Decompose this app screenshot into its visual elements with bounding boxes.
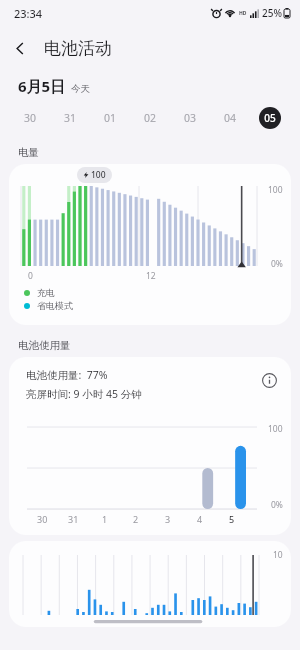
staticText: 2: [133, 513, 139, 525]
staticText: 100: [91, 169, 106, 181]
staticText: 01: [104, 111, 117, 125]
staticText: 31: [68, 513, 79, 525]
staticText: 100: [268, 423, 283, 435]
staticText: 4: [197, 513, 203, 525]
button[interactable]: 02: [130, 98, 170, 138]
staticText: 亮屏时间: 9 小时 45 分钟: [26, 387, 142, 401]
staticText: 100: [268, 184, 283, 196]
staticText: 电池活动: [44, 38, 112, 59]
staticText: 10: [273, 549, 283, 561]
staticText: 12: [146, 270, 156, 282]
staticText: HD: [239, 10, 247, 17]
staticText: 05: [264, 111, 276, 125]
staticText: 30: [24, 111, 37, 125]
staticText: 02: [144, 111, 157, 125]
staticText: 23:34: [14, 6, 43, 21]
staticText: 5: [229, 513, 235, 525]
button[interactable]: 100: [9, 164, 291, 325]
staticText: 省电模式: [37, 300, 73, 311]
button[interactable]: 03: [170, 98, 210, 138]
staticText: 0%: [271, 258, 283, 270]
button[interactable]: 04: [210, 98, 250, 138]
staticText: 25%: [262, 6, 282, 20]
staticText: 0: [28, 270, 33, 282]
button[interactable]: 31: [50, 98, 90, 138]
staticText: 03: [184, 111, 197, 125]
staticText: 3: [165, 513, 171, 525]
button[interactable]: 返回: [0, 28, 40, 68]
staticText: 30: [37, 513, 48, 525]
button[interactable]: 30: [10, 98, 50, 138]
staticText: 今天: [71, 83, 90, 95]
button[interactable]: 05: [250, 98, 290, 138]
staticText: 04: [224, 111, 237, 125]
button[interactable]: 01: [90, 98, 130, 138]
staticText: 电池使用量: [18, 339, 71, 352]
staticText: 电池使用量: 77%: [26, 368, 108, 382]
staticText: 31: [64, 111, 77, 125]
staticText: 1: [102, 513, 108, 525]
staticText: 0%: [271, 499, 283, 511]
staticText: 电量: [18, 146, 39, 159]
staticText: 6月5日: [18, 76, 66, 96]
button[interactable]: 信息: [257, 368, 281, 392]
staticText: 充电: [37, 287, 55, 298]
